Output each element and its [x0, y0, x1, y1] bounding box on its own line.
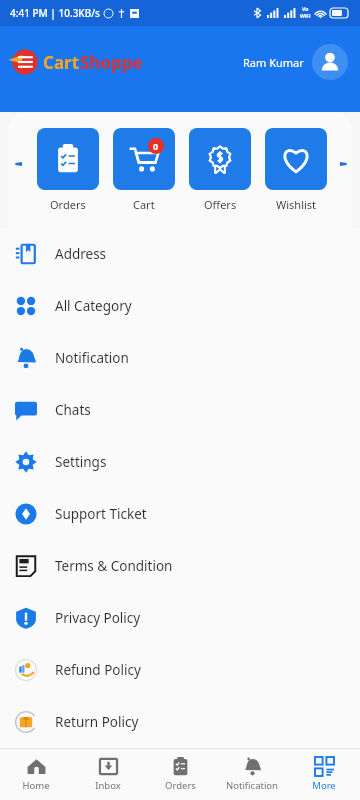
staticText: More — [312, 779, 336, 792]
button[interactable]: Notification — [0, 332, 360, 384]
button[interactable]: Inbox — [72, 749, 144, 800]
button[interactable]: Support Ticket — [0, 488, 360, 540]
staticText: Notification — [226, 779, 278, 792]
staticText: Orders — [50, 197, 86, 212]
staticText: All Category — [55, 297, 132, 315]
staticText: Chats — [55, 401, 91, 419]
button[interactable]: Privacy Policy — [0, 592, 360, 644]
staticText: Inbox — [95, 779, 121, 792]
button[interactable]: Wishlist — [258, 112, 334, 228]
staticText: Return Policy — [55, 713, 139, 731]
staticText: 4:41 PM | 10.3KB/s — [10, 6, 100, 20]
staticText: WiFi — [300, 13, 311, 20]
staticText: Terms & Condition — [55, 557, 173, 575]
staticText: 0 — [153, 140, 159, 152]
button[interactable]: Notification — [216, 749, 288, 800]
button[interactable]: Refund Policy — [0, 644, 360, 696]
staticText: Refund Policy — [55, 661, 141, 679]
button[interactable]: Terms & Condition — [0, 540, 360, 592]
staticText: Vo — [302, 6, 309, 13]
button[interactable]: All Category — [0, 280, 360, 332]
button[interactable]: 0 — [106, 112, 182, 228]
button[interactable]: Settings — [0, 436, 360, 488]
button[interactable]: Ram Kumar — [243, 44, 348, 80]
staticText: Orders — [165, 779, 196, 792]
button[interactable]: Offers — [182, 112, 258, 228]
staticText: Privacy Policy — [55, 609, 141, 627]
staticText: Home — [22, 779, 50, 792]
button[interactable]: Orders — [30, 112, 106, 228]
staticText: Settings — [55, 453, 107, 471]
button[interactable]: More — [288, 749, 360, 800]
button[interactable]: Home — [0, 749, 72, 800]
staticText: Notification — [55, 349, 129, 367]
staticText: Offers — [204, 197, 237, 212]
staticText: Shoppe — [80, 51, 143, 74]
staticText: Support Ticket — [55, 505, 147, 523]
staticText: Ram Kumar — [243, 55, 304, 70]
button[interactable]: Chats — [0, 384, 360, 436]
button[interactable]: Scroll right — [334, 112, 352, 228]
button[interactable]: Address — [0, 228, 360, 280]
staticText: Address — [55, 245, 107, 263]
button[interactable]: Orders — [144, 749, 216, 800]
button[interactable]: Return Policy — [0, 696, 360, 748]
staticText: Wishlist — [276, 197, 317, 212]
button[interactable]: Scroll left — [8, 112, 30, 228]
staticText: Cart — [43, 51, 80, 74]
staticText: Cart — [133, 197, 155, 212]
